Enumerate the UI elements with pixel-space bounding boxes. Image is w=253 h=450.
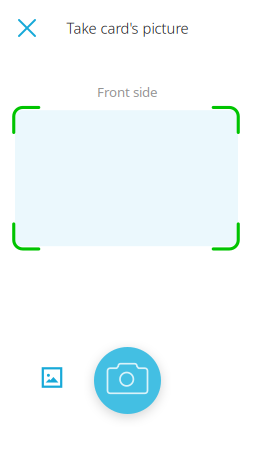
staticText: Front side	[97, 83, 158, 101]
staticText: Take card's picture	[66, 18, 188, 38]
button[interactable]: Choose from gallery	[30, 355, 74, 399]
button[interactable]: Take picture	[94, 347, 161, 414]
button[interactable]: Close	[5, 6, 49, 50]
